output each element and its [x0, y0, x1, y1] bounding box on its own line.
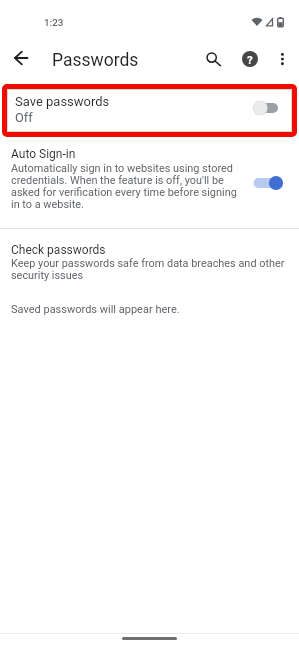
- staticText: security issues: [11, 269, 84, 282]
- button[interactable]: Auto Sign-in: [0, 137, 299, 228]
- staticText: in to a website.: [11, 198, 84, 211]
- staticText: Keep your passwords safe from data breac…: [11, 257, 285, 270]
- button[interactable]: [245, 175, 283, 191]
- staticText: ?: [247, 53, 253, 66]
- button[interactable]: Check passwords: [0, 229, 299, 289]
- staticText: asked for verification every time before…: [11, 186, 237, 199]
- staticText: 1:23: [44, 17, 64, 28]
- staticText: Saved passwords will appear here.: [11, 303, 180, 316]
- button[interactable]: [6, 42, 38, 74]
- staticText: credentials. When the feature is off, yo…: [11, 174, 224, 187]
- button[interactable]: [245, 100, 283, 116]
- button[interactable]: Save passwords: [2, 84, 297, 137]
- button[interactable]: [198, 42, 228, 72]
- staticText: Save passwords: [15, 94, 110, 109]
- staticText: Auto Sign-in: [11, 147, 76, 161]
- staticText: Passwords: [52, 50, 139, 71]
- staticText: Check passwords: [11, 243, 106, 257]
- staticText: Off: [15, 110, 33, 125]
- button[interactable]: [268, 42, 298, 72]
- button[interactable]: ?: [235, 44, 265, 74]
- staticText: Automatically sign in to websites using …: [11, 162, 233, 175]
